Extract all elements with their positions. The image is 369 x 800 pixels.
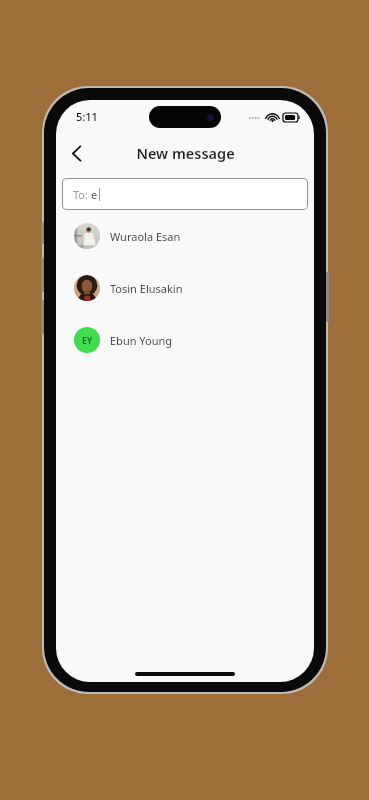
staticText: Ebun Young bbox=[110, 333, 173, 348]
button[interactable]: To: bbox=[62, 178, 308, 210]
staticText: EY bbox=[82, 334, 93, 346]
staticText: Wuraola Esan bbox=[110, 229, 181, 244]
button[interactable]: EY bbox=[56, 326, 314, 354]
staticText: 5:11 bbox=[76, 109, 98, 124]
button[interactable]: Wuraola Esan bbox=[56, 222, 314, 250]
button[interactable]: Tosin Elusakin bbox=[56, 274, 314, 302]
staticText: e bbox=[91, 187, 98, 202]
staticText: To: bbox=[73, 187, 91, 202]
button[interactable]: Back bbox=[59, 136, 93, 170]
staticText: Tosin Elusakin bbox=[110, 281, 183, 296]
staticText: New message bbox=[136, 143, 235, 163]
